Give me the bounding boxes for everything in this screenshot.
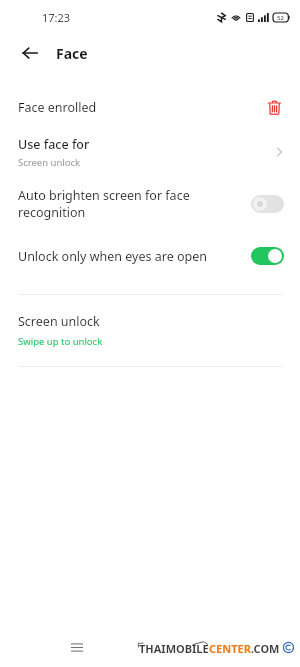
button[interactable]: Auto brighten screen for face recognitio… (0, 176, 300, 232)
staticText: 52 (277, 14, 284, 22)
staticText: Face (56, 44, 88, 63)
button[interactable]: Toggle off (251, 195, 284, 213)
button[interactable]: Back (16, 39, 44, 67)
staticText: 17:23 (42, 10, 71, 25)
staticText: Auto brighten screen for face recognitio… (18, 187, 243, 221)
staticText: Screen unlock (18, 156, 81, 169)
button[interactable]: Screen unlock (0, 295, 300, 366)
staticText: CENTER (209, 641, 251, 656)
staticText: Face enrolled (18, 99, 262, 116)
staticText: .COM (251, 641, 280, 656)
button[interactable]: Menu (64, 634, 90, 660)
staticText: Swipe up to unlock (18, 335, 103, 348)
staticText: Unlock only when eyes are open (18, 248, 243, 265)
staticText: Use face for (18, 136, 90, 153)
staticText: THAIMOBILE (139, 641, 209, 656)
staticText: Screen unlock (18, 313, 100, 330)
button[interactable]: Unlock only when eyes are open (0, 232, 300, 280)
button[interactable]: Toggle on (251, 247, 284, 265)
button[interactable]: Face enrolled (0, 86, 300, 128)
button[interactable]: Use face for (0, 128, 300, 176)
button[interactable]: Delete face data (262, 95, 286, 119)
